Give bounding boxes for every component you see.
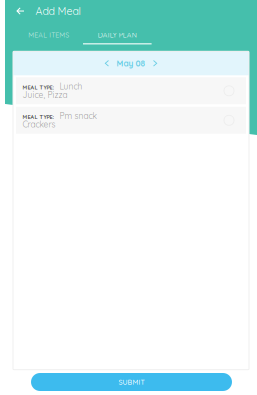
button[interactable]: MEAL ITEMS [14, 22, 83, 44]
staticText: Lunch [59, 81, 82, 92]
staticText: MEAL TYPE: [22, 84, 54, 91]
staticText: Crackers [22, 119, 55, 130]
staticText: May 08 [116, 58, 145, 68]
staticText: SUBMIT [118, 378, 144, 386]
button[interactable]: SUBMIT [31, 373, 232, 391]
button[interactable]: Back [11, 0, 29, 22]
staticText: Add Meal [35, 4, 80, 18]
staticText: Juice, Pizza [22, 90, 67, 100]
button[interactable]: DAILY PLAN [83, 22, 152, 44]
staticText: Pm snack [59, 111, 96, 121]
button[interactable]: MEAL TYPE: [16, 77, 246, 104]
button[interactable]: Previous day [101, 56, 112, 70]
button[interactable]: MEAL TYPE: [16, 107, 246, 134]
button[interactable]: Next day [149, 56, 161, 70]
staticText: DAILY PLAN [98, 30, 137, 39]
staticText: MEAL ITEMS [28, 30, 69, 39]
staticText: MEAL TYPE: [22, 113, 54, 120]
